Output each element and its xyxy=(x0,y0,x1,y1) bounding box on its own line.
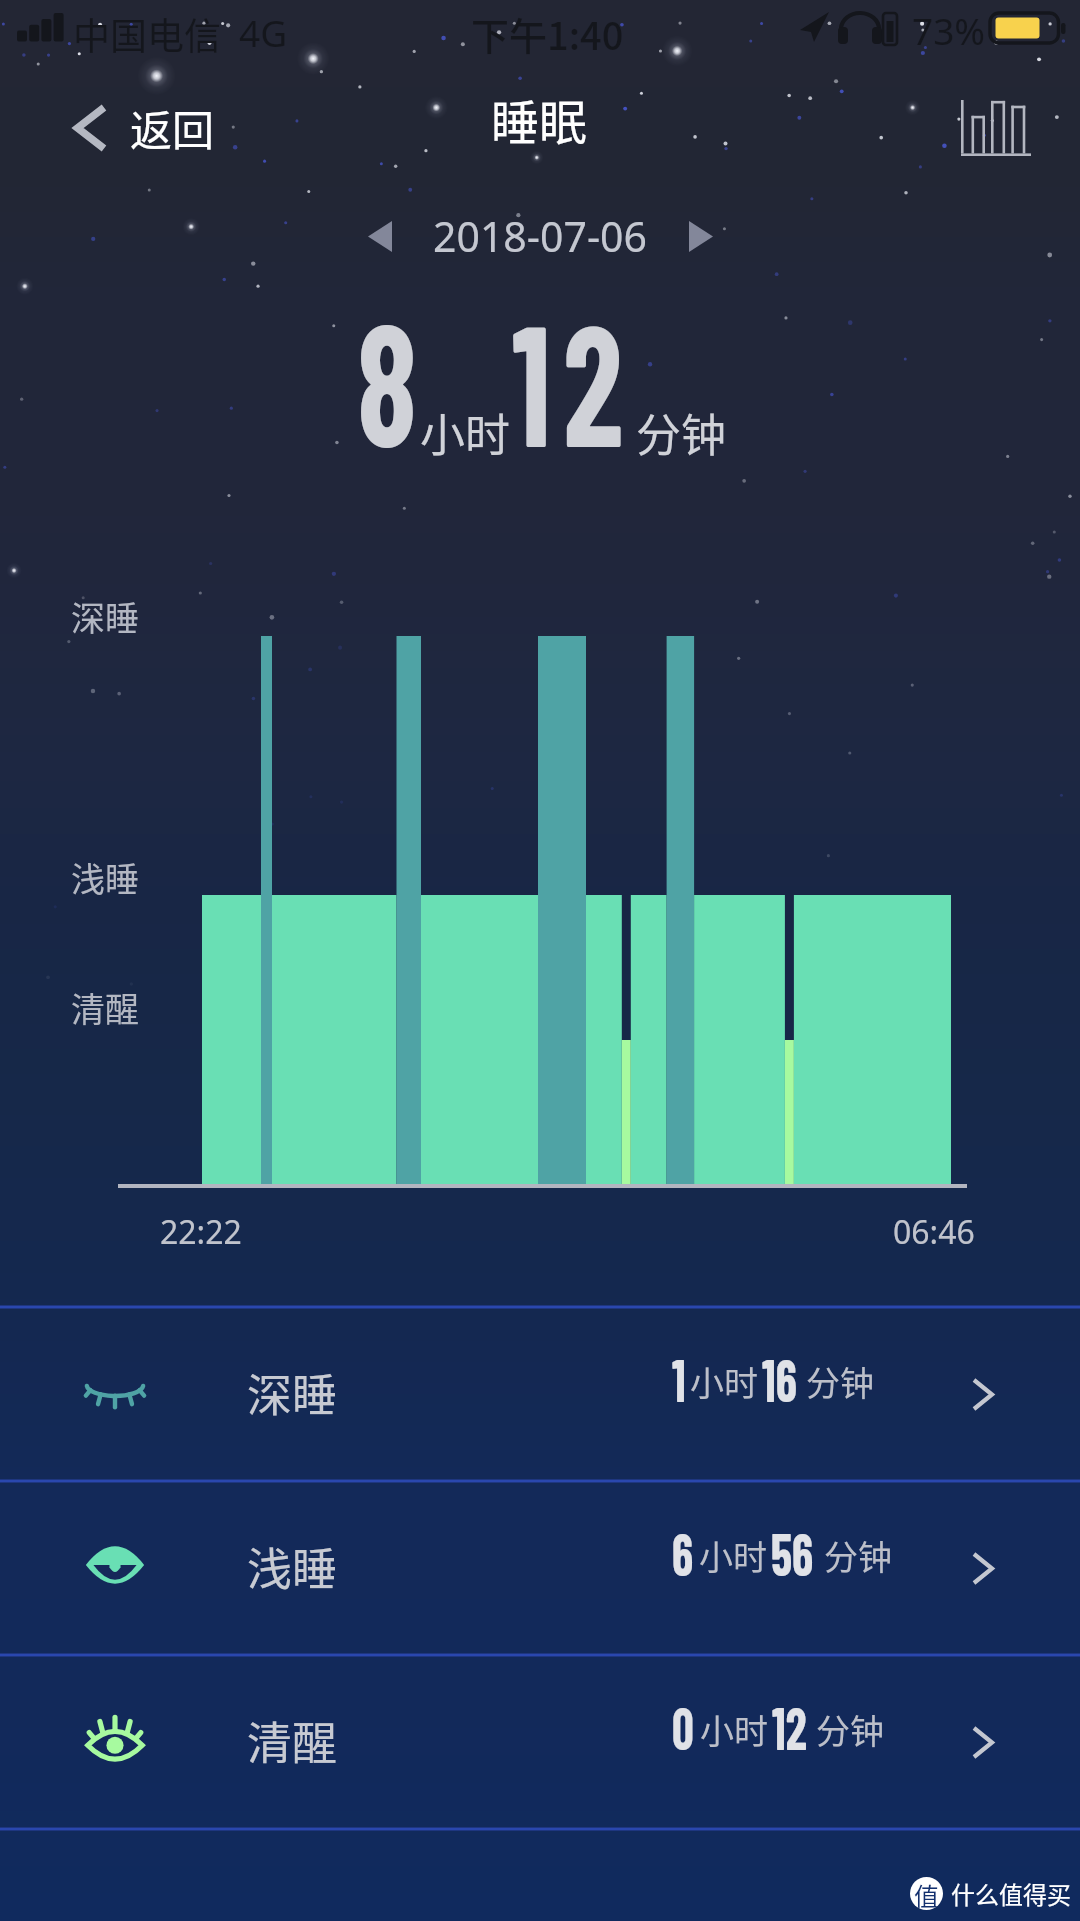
button[interactable]: 返回 xyxy=(57,85,237,170)
staticText: 下午1:40 xyxy=(471,6,624,61)
staticText: 12 xyxy=(772,1690,807,1762)
staticText: 06:46 xyxy=(893,1210,975,1254)
staticText: 小时 xyxy=(690,1357,758,1406)
staticText: 浅睡 xyxy=(71,853,139,902)
staticText: 小时 xyxy=(420,400,511,465)
staticText: 2018-07-06 xyxy=(433,208,648,264)
staticText: 73% xyxy=(912,5,986,55)
button[interactable]: 后一天 xyxy=(671,209,731,264)
staticText: 小时 xyxy=(700,1705,768,1754)
staticText: 分钟 xyxy=(806,1357,874,1406)
button[interactable]: 清醒 xyxy=(0,1657,1080,1827)
staticText: 深睡 xyxy=(71,592,139,641)
staticText: 6 xyxy=(672,1516,694,1588)
staticText: 中国电信 xyxy=(73,7,221,61)
staticText: 1 xyxy=(672,1342,686,1414)
staticText: 深睡 xyxy=(247,1360,338,1425)
button[interactable]: 统计 xyxy=(950,88,1042,169)
staticText: 值 xyxy=(914,1877,940,1910)
staticText: 12 xyxy=(512,277,635,481)
staticText: 22:22 xyxy=(160,1210,242,1254)
button[interactable]: 深睡 xyxy=(0,1309,1080,1479)
staticText: 4G xyxy=(239,7,288,57)
staticText: 分钟 xyxy=(824,1531,892,1580)
staticText: 56 xyxy=(771,1516,813,1588)
staticText: 睡眠 xyxy=(491,84,588,154)
button[interactable]: 前一天 xyxy=(350,209,410,264)
staticText: 16 xyxy=(762,1342,797,1414)
staticText: 分钟 xyxy=(816,1705,884,1754)
staticText: 清醒 xyxy=(247,1708,338,1773)
staticText: 清醒 xyxy=(71,983,139,1032)
staticText: 8 xyxy=(357,277,429,481)
staticText: 浅睡 xyxy=(247,1534,338,1599)
staticText: 分钟 xyxy=(636,400,727,465)
staticText: 什么值得买 xyxy=(951,1876,1071,1911)
staticText: 返回 xyxy=(130,97,215,158)
staticText: 小时 xyxy=(699,1531,767,1580)
staticText: 0 xyxy=(672,1690,694,1762)
button[interactable]: 浅睡 xyxy=(0,1483,1080,1653)
